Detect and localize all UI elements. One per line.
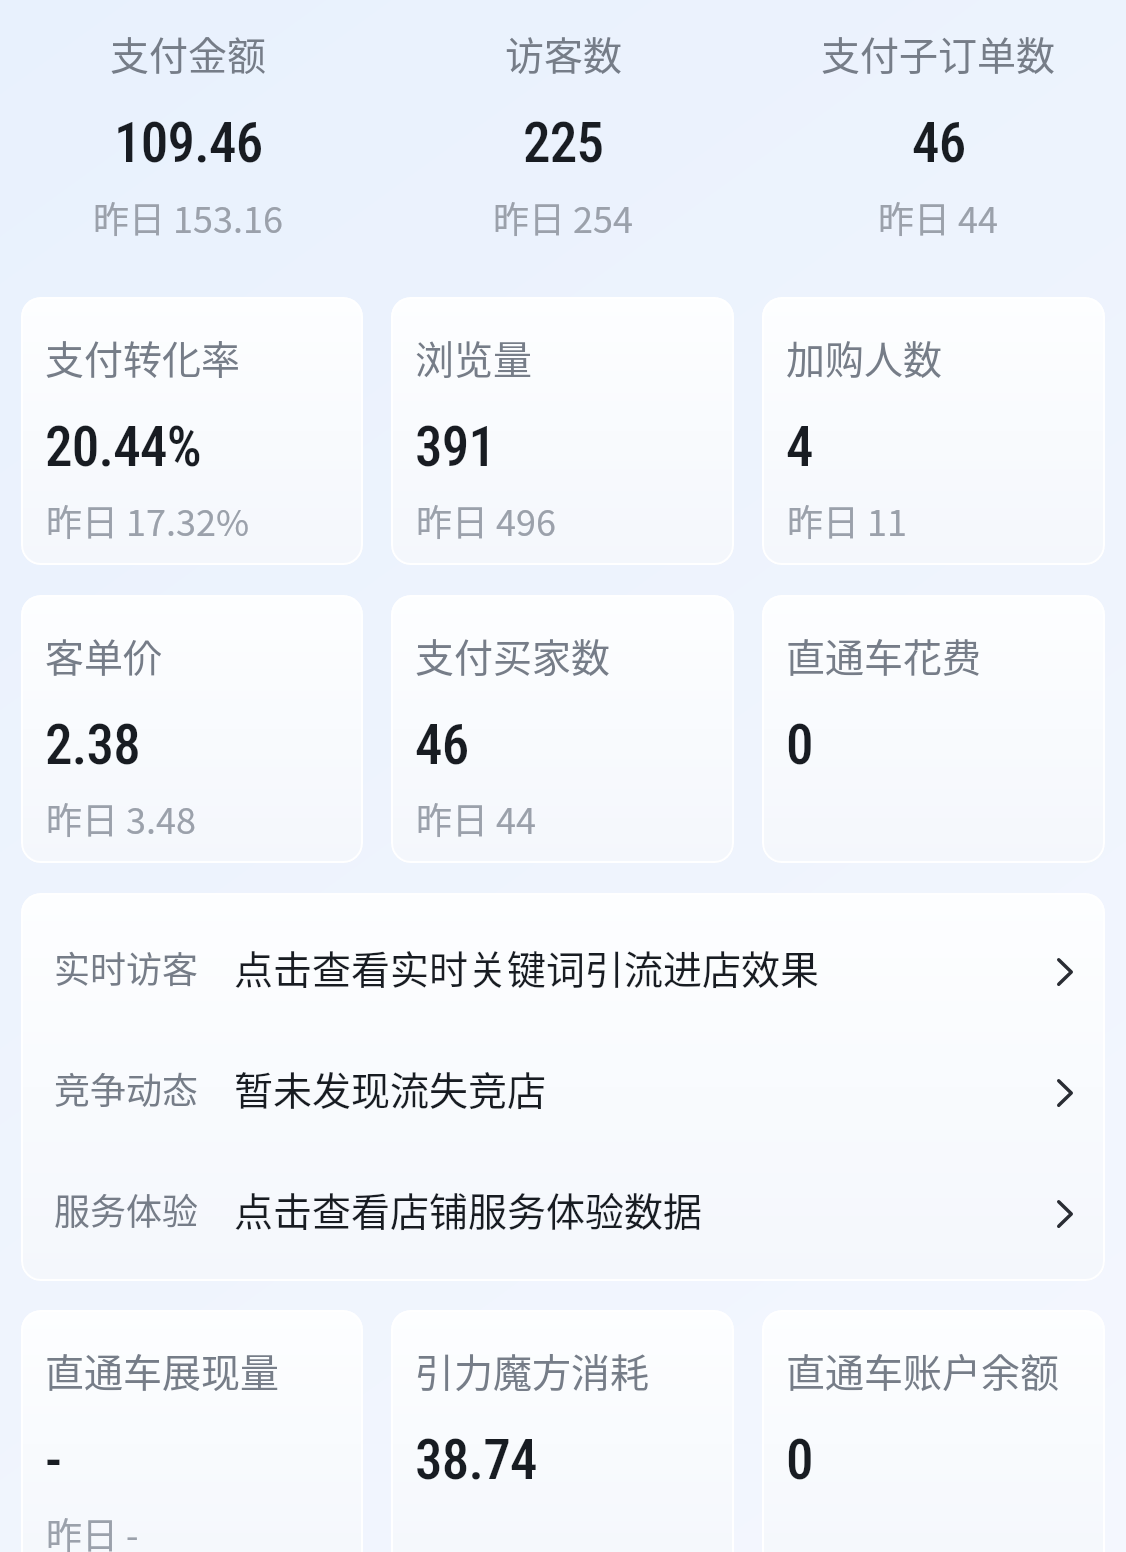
button[interactable]: 服务体验: [21, 1148, 1105, 1269]
staticText: 直通车展现量: [45, 1342, 280, 1398]
staticText: 昨日 496: [416, 494, 557, 546]
button[interactable]: 支付金额: [0, 0, 376, 270]
staticText: 点击查看店铺服务体验数据: [234, 1181, 703, 1237]
button[interactable]: 支付买家数: [391, 595, 734, 863]
staticText: 支付子订单数: [821, 25, 1056, 81]
staticText: 支付买家数: [415, 627, 611, 683]
staticText: 支付金额: [110, 25, 267, 81]
staticText: 4: [786, 415, 813, 479]
other: 查看详情: [1057, 1079, 1073, 1107]
button[interactable]: 客单价: [21, 595, 363, 863]
staticText: 昨日 153.16: [93, 191, 283, 243]
staticText: 0: [786, 713, 813, 777]
staticText: 昨日 44: [878, 191, 999, 243]
button[interactable]: 支付子订单数: [751, 0, 1126, 270]
staticText: 昨日 -: [46, 1507, 139, 1552]
button[interactable]: 访客数: [376, 0, 751, 270]
staticText: 直通车花费: [786, 627, 982, 683]
staticText: 225: [523, 111, 604, 175]
staticText: 38.74: [415, 1428, 537, 1492]
button[interactable]: 加购人数: [762, 297, 1105, 565]
button[interactable]: 引力魔方消耗: [391, 1310, 734, 1552]
staticText: 访客数: [505, 25, 623, 81]
staticText: 昨日 254: [493, 191, 634, 243]
button[interactable]: 浏览量: [391, 297, 734, 565]
staticText: 暂未发现流失竞店: [234, 1060, 547, 1116]
staticText: 46: [912, 111, 966, 175]
button[interactable]: 直通车账户余额: [762, 1310, 1105, 1552]
staticText: 竞争动态: [54, 1062, 199, 1114]
staticText: 支付转化率: [45, 329, 241, 385]
staticText: 服务体验: [54, 1183, 199, 1235]
button[interactable]: 直通车花费: [762, 595, 1105, 863]
staticText: 昨日 3.48: [46, 792, 197, 844]
staticText: 浏览量: [415, 329, 533, 385]
button[interactable]: 实时访客: [21, 906, 1105, 1027]
staticText: 20.44%: [45, 415, 201, 479]
staticText: 点击查看实时关键词引流进店效果: [234, 939, 820, 995]
staticText: 引力魔方消耗: [415, 1342, 650, 1398]
staticText: 昨日 44: [416, 792, 537, 844]
staticText: 391: [415, 415, 496, 479]
staticText: 实时访客: [54, 941, 199, 993]
staticText: 直通车账户余额: [786, 1342, 1060, 1398]
staticText: 客单价: [45, 627, 163, 683]
button[interactable]: 支付转化率: [21, 297, 363, 565]
staticText: 加购人数: [786, 329, 943, 385]
button[interactable]: 竞争动态: [21, 1027, 1105, 1148]
staticText: 0: [786, 1428, 813, 1492]
staticText: 46: [415, 713, 469, 777]
staticText: 109.46: [114, 111, 263, 175]
staticText: 昨日 11: [787, 494, 908, 546]
staticText: 2.38: [45, 713, 140, 777]
staticText: -: [45, 1428, 62, 1492]
other: 查看详情: [1057, 1200, 1073, 1228]
staticText: 昨日 17.32%: [46, 494, 250, 546]
button[interactable]: 直通车展现量: [21, 1310, 363, 1552]
other: 查看详情: [1057, 958, 1073, 986]
button[interactable]: 实时访客: [21, 893, 1105, 1281]
